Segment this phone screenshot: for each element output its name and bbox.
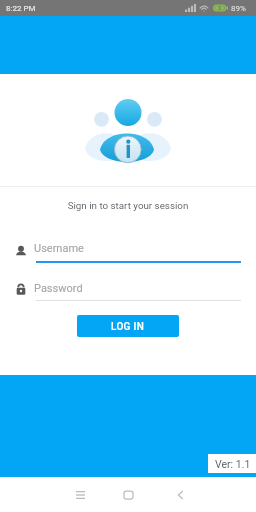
staticText: Password <box>34 282 83 295</box>
staticText: Username <box>34 242 84 255</box>
staticText: 8:22 PM <box>6 4 36 13</box>
button[interactable]: Home <box>110 481 146 509</box>
button[interactable]: Password <box>0 276 256 306</box>
button[interactable]: Recent apps <box>62 481 98 509</box>
button[interactable]: LOG IN <box>77 315 179 337</box>
staticText: Sign in to start your session <box>0 200 256 211</box>
staticText: Ver: 1.1 <box>215 458 251 470</box>
staticText: 89% <box>231 4 246 13</box>
button[interactable]: Back <box>160 481 196 509</box>
staticText: LOG IN <box>111 321 145 333</box>
button[interactable]: Username <box>0 236 256 266</box>
